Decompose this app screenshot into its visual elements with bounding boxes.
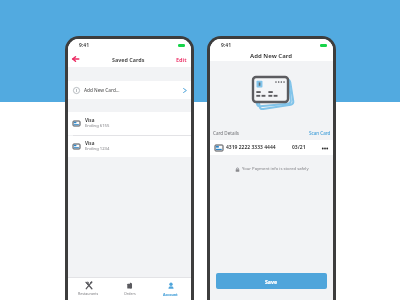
staticText: 9:41 [79, 42, 89, 49]
staticText: 03/21 [292, 144, 306, 151]
staticText: Your Payment info is stored safely [242, 166, 309, 172]
staticText: Card Details [213, 130, 240, 136]
staticText: Edit [176, 56, 187, 63]
button[interactable]: Add New Card... [68, 81, 191, 99]
staticText: Restaurants [78, 291, 99, 296]
button[interactable]: More options [321, 143, 329, 153]
staticText: Add New Card... [84, 87, 120, 93]
button[interactable]: Scan Card [309, 130, 331, 136]
button[interactable]: Visa [68, 136, 191, 157]
button[interactable]: Account [150, 278, 191, 300]
staticText: Visa [85, 140, 95, 146]
button[interactable]: Restaurants [68, 278, 109, 300]
staticText: Ending 1234 [85, 146, 110, 152]
button[interactable]: Orders [109, 278, 150, 300]
staticText: 9:41 [221, 42, 231, 49]
button[interactable]: Save [216, 273, 327, 289]
button[interactable]: Back [72, 53, 82, 65]
staticText: Orders [124, 291, 136, 296]
staticText: 4319 2222 3333 4444 [226, 144, 276, 151]
button[interactable]: Edit [175, 56, 188, 63]
staticText: Saved Cards [112, 56, 145, 63]
button[interactable]: 4319 2222 3333 4444 [210, 140, 333, 155]
button[interactable]: Visa [68, 112, 191, 135]
staticText: Ending 6155 [85, 123, 110, 129]
staticText: Visa [85, 117, 95, 123]
staticText: Add New Card [250, 52, 293, 60]
staticText: Scan Card [309, 130, 331, 136]
staticText: Save [265, 278, 278, 285]
staticText: Account [163, 292, 178, 297]
